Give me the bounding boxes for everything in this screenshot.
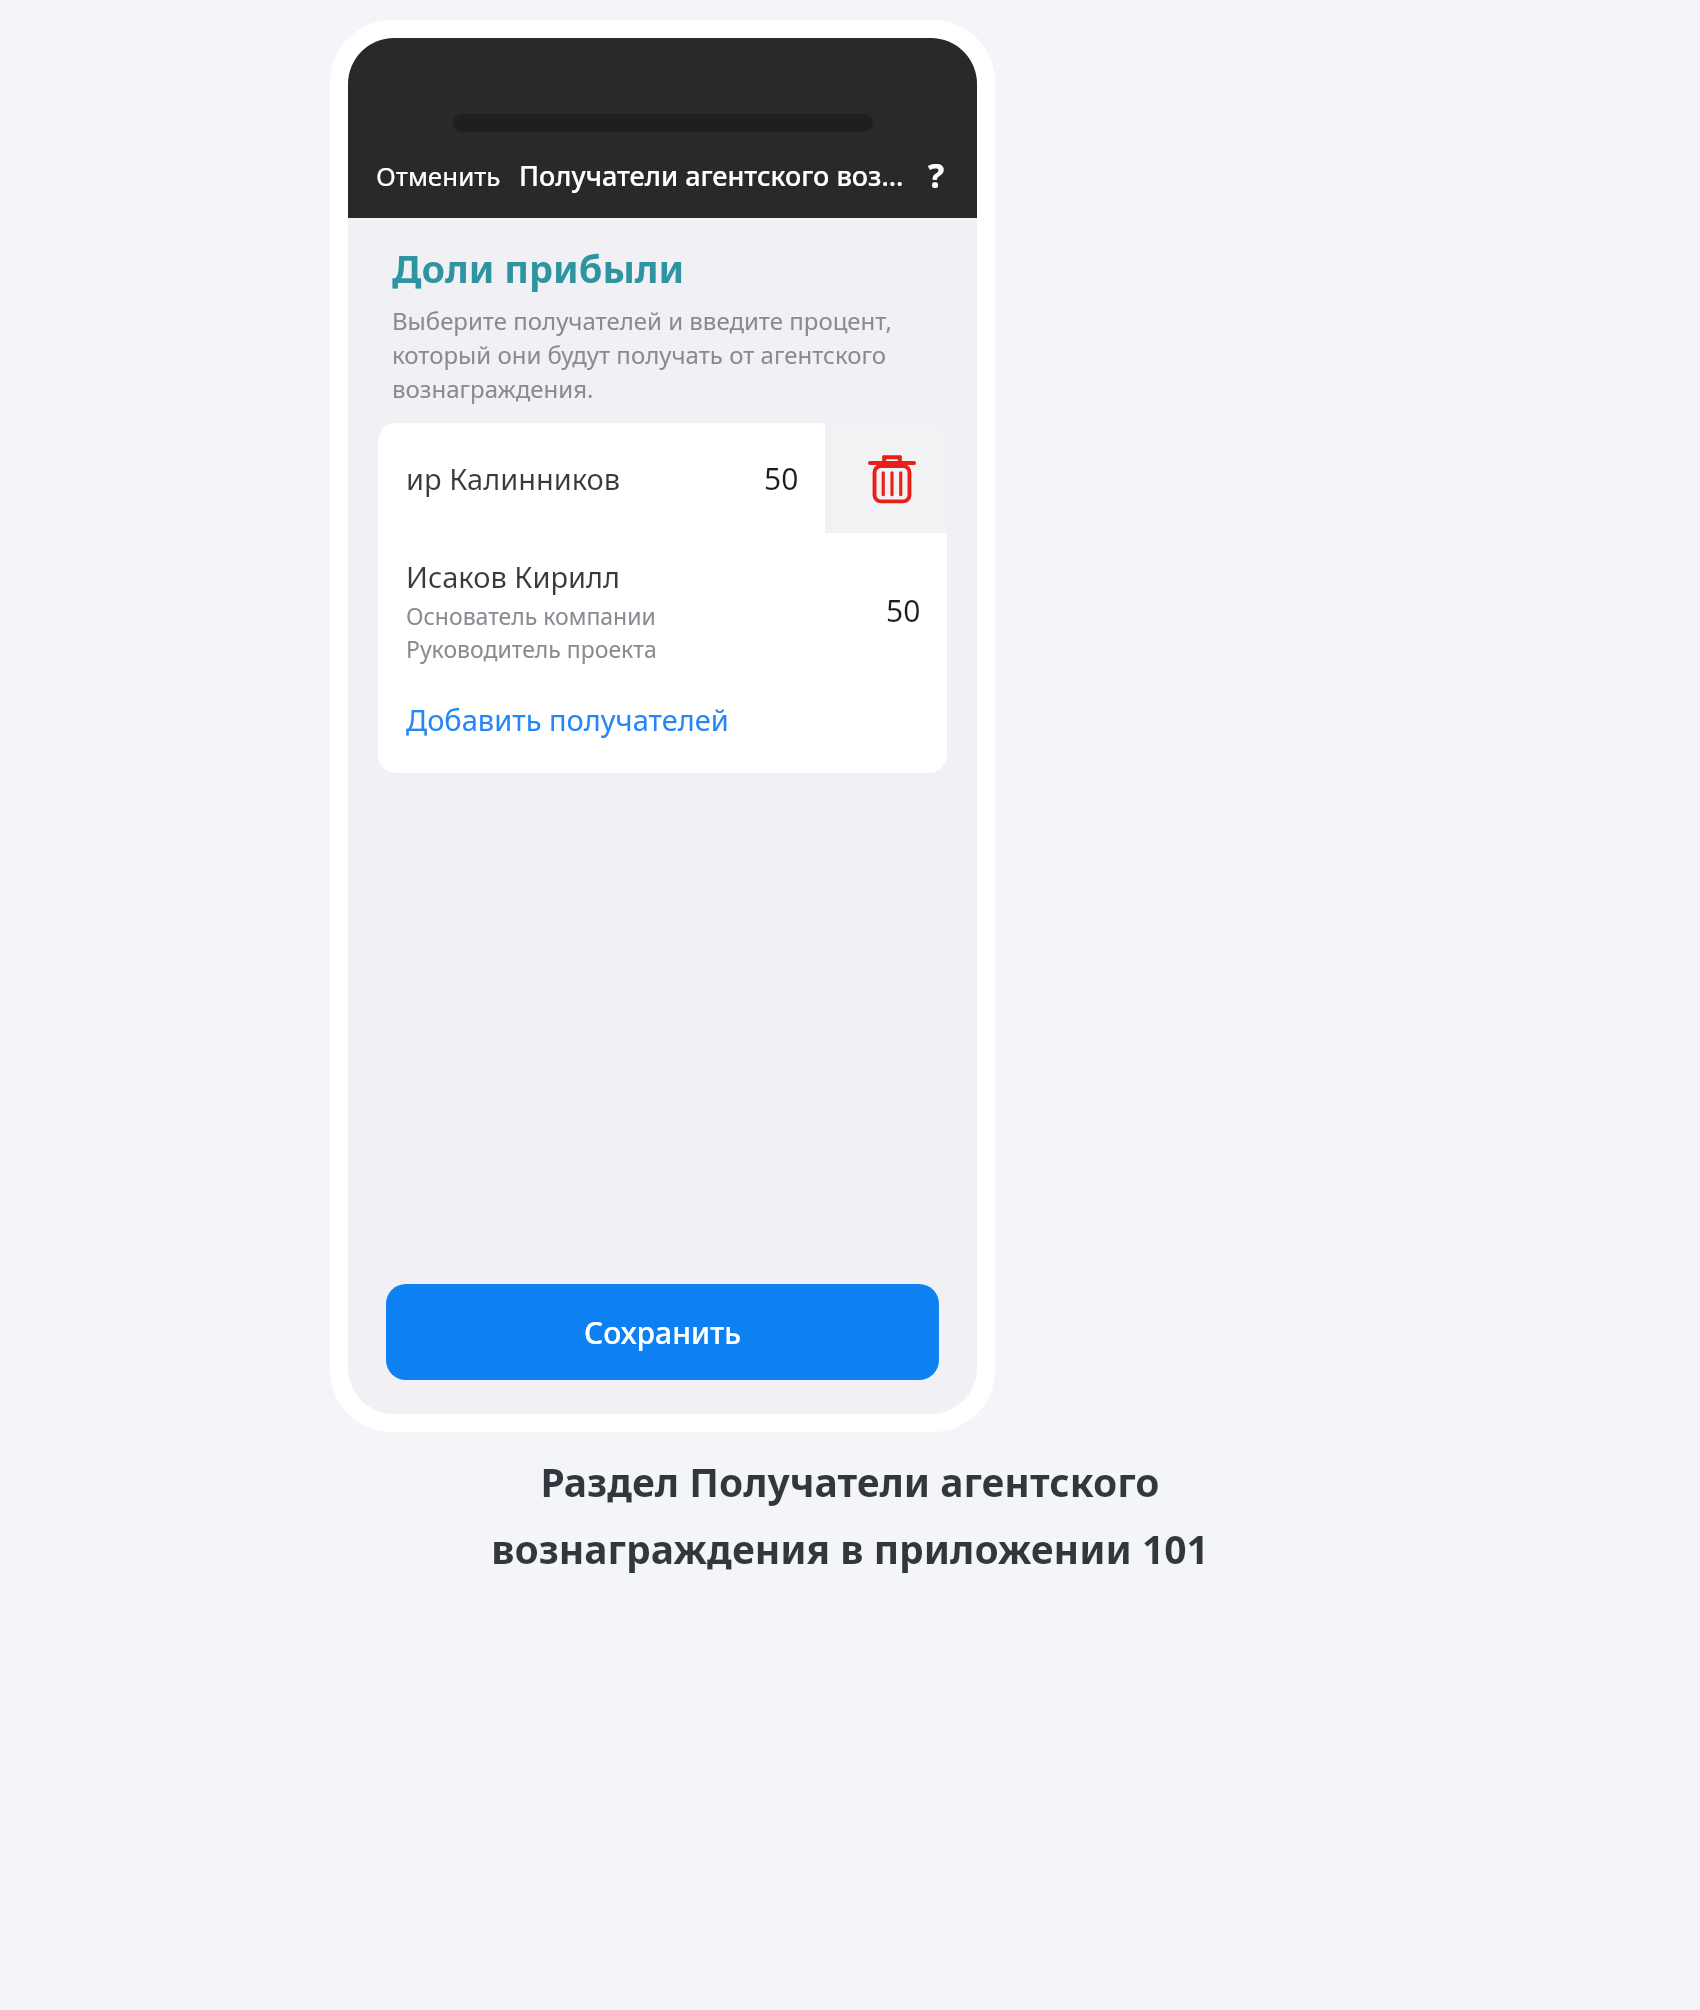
staticText: Сохранить	[584, 1312, 742, 1353]
button[interactable]: Help	[920, 148, 953, 202]
staticText: Основатель компании	[406, 600, 656, 631]
staticText: ир Калинников	[406, 459, 621, 498]
staticText: Доли прибыли	[392, 242, 685, 294]
button[interactable]: Delete	[837, 423, 947, 533]
staticText: Руководитель проекта	[406, 633, 657, 664]
staticText: Отменить	[376, 158, 501, 193]
button[interactable]: Отменить	[372, 152, 505, 199]
staticText: Добавить получателей	[406, 700, 729, 739]
staticText: ?	[928, 152, 945, 198]
button[interactable]: ир Калинников	[378, 423, 825, 533]
staticText: 50	[886, 590, 921, 631]
staticText: Получатели агентского воз…	[519, 157, 904, 194]
staticText: вознаграждения в приложении 101	[491, 1522, 1209, 1575]
staticText: Выберите получателей и введите процент, …	[392, 304, 892, 405]
button[interactable]: Добавить получателей	[378, 682, 947, 773]
staticText: Раздел Получатели агентского	[540, 1455, 1160, 1508]
staticText: Исаков Кирилл	[406, 557, 621, 596]
button[interactable]: Сохранить	[386, 1284, 939, 1380]
button[interactable]: Исаков Кирилл	[378, 533, 947, 682]
staticText: 50	[764, 458, 799, 499]
